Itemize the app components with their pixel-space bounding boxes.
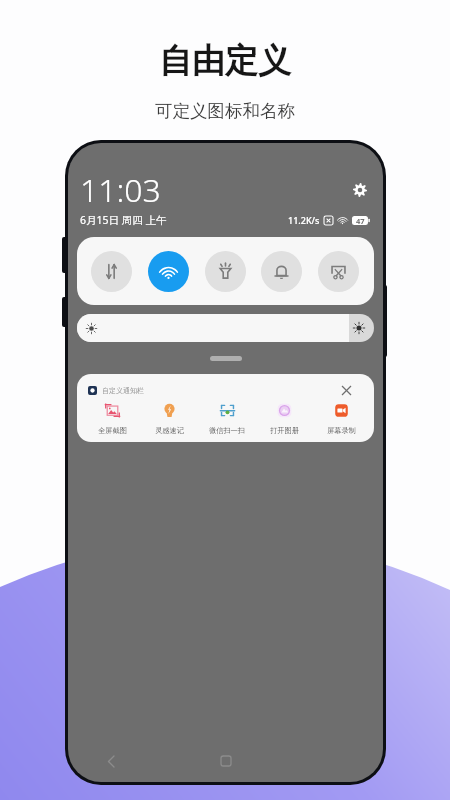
staticText: 6月15日 周四 上午 (80, 213, 167, 227)
button[interactable]: Settings (349, 179, 371, 201)
button[interactable]: 微信扫一扫 (207, 402, 247, 435)
staticText: 自定义通知栏 (102, 386, 144, 395)
staticText: 灵感速记 (155, 426, 184, 435)
staticText: 自由定义 (159, 40, 291, 82)
button[interactable]: Do not disturb (261, 251, 302, 292)
button[interactable]: 屏幕录制 (321, 402, 361, 435)
button[interactable]: Mobile data (91, 251, 132, 292)
button[interactable]: Close (339, 383, 353, 397)
staticText: 11.2K/s (288, 214, 320, 226)
staticText: 11:03 (80, 168, 161, 212)
button[interactable]: 灵感速记 (149, 402, 189, 435)
button[interactable]: Cast (318, 251, 359, 292)
button[interactable]: Wi-Fi (148, 251, 189, 292)
staticText: 可定义图标和名称 (155, 100, 295, 122)
staticText: 47 (356, 216, 365, 225)
button[interactable]: Back (98, 748, 124, 774)
staticText: 全屏截图 (98, 426, 127, 435)
button[interactable]: 全屏截图 (92, 402, 132, 435)
button[interactable]: Brightness (77, 314, 374, 342)
staticText: 屏幕录制 (327, 426, 356, 435)
button[interactable]: 打开图册 (264, 402, 304, 435)
staticText: 打开图册 (270, 426, 299, 435)
button[interactable]: Flashlight (205, 251, 246, 292)
button[interactable]: Home (213, 748, 239, 774)
staticText: 微信扫一扫 (209, 426, 245, 435)
